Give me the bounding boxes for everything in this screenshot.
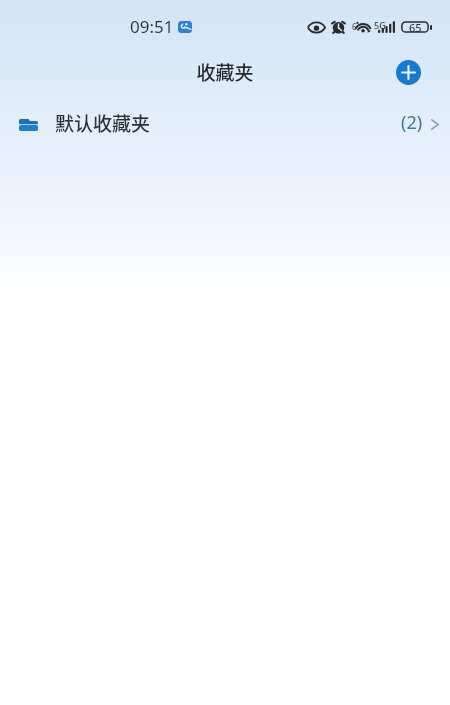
staticText: (2)	[401, 110, 423, 135]
staticText: 6	[352, 21, 357, 32]
staticText: 默认收藏夹	[55, 109, 151, 137]
button[interactable]: 默认收藏夹	[0, 101, 450, 145]
staticText: 5G	[374, 19, 386, 31]
button[interactable]: Add folder	[396, 60, 421, 85]
staticText: 收藏夹	[196, 58, 254, 86]
staticText: 65	[409, 20, 422, 35]
staticText: 09:51	[130, 15, 174, 38]
